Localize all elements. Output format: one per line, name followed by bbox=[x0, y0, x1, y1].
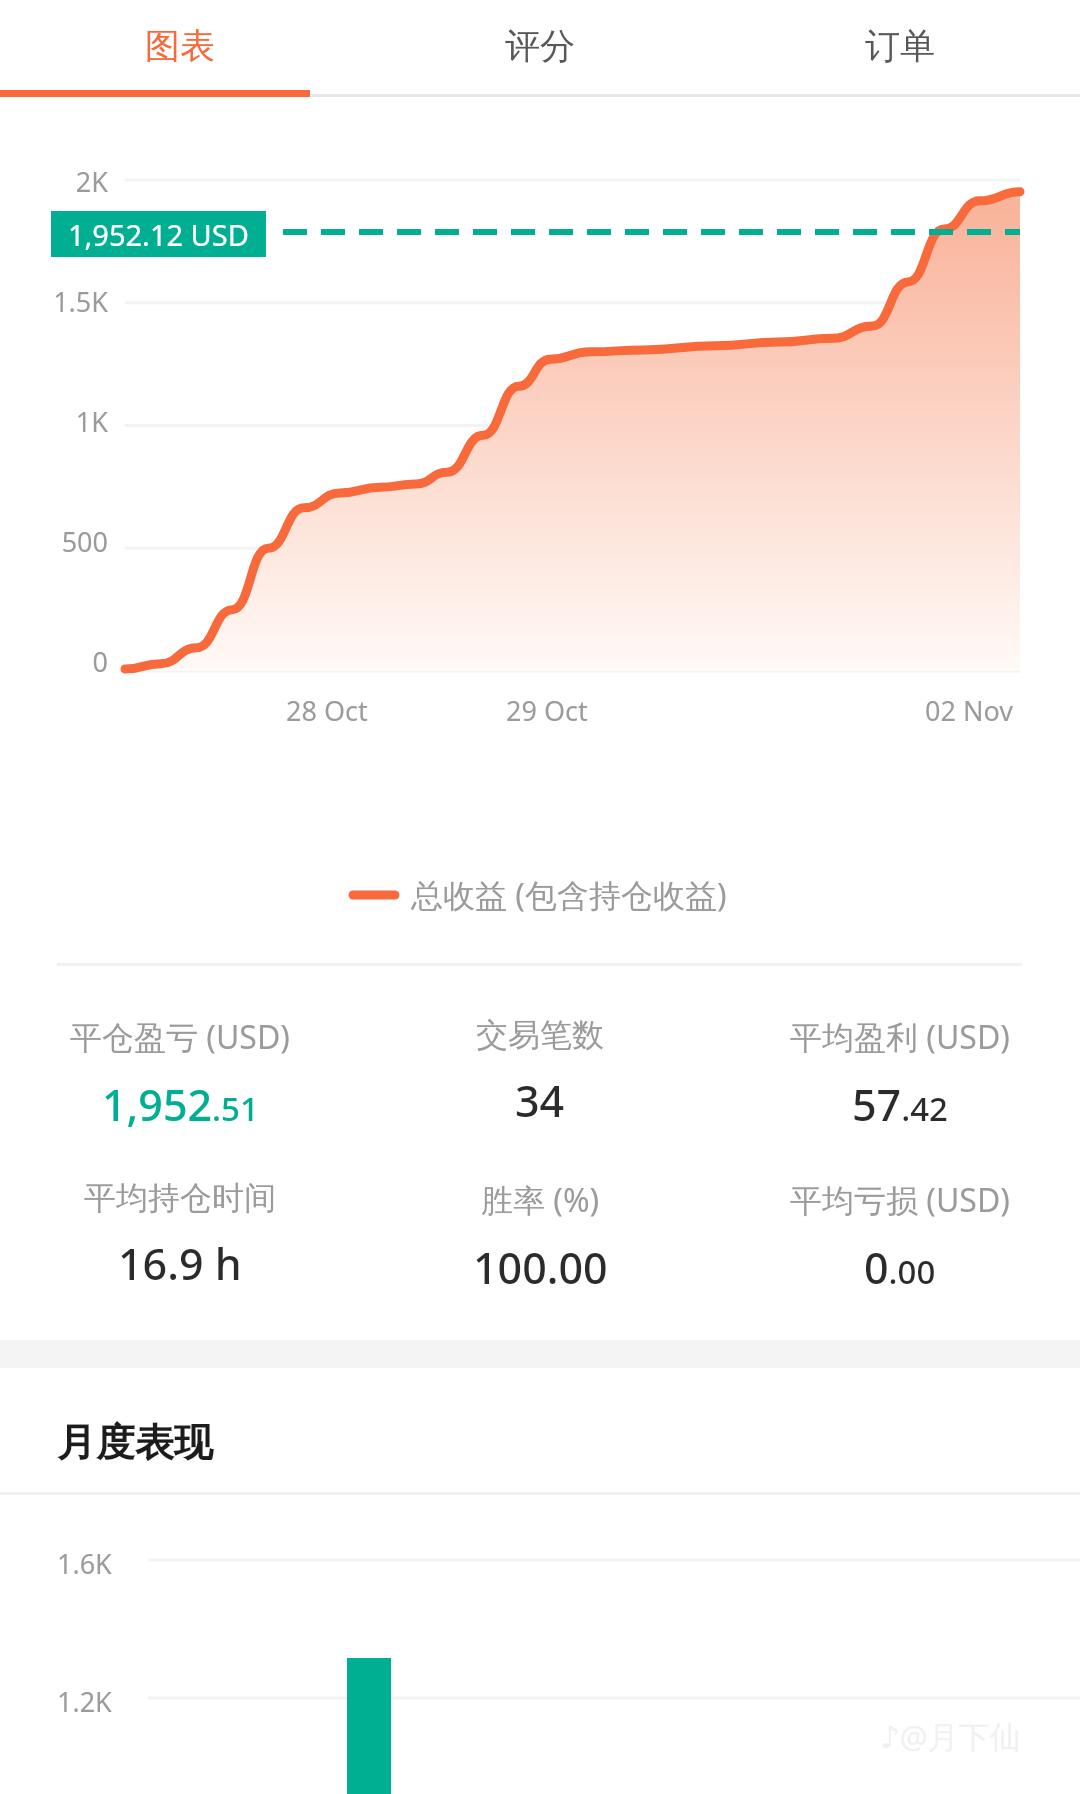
staticText: 28 Oct bbox=[286, 692, 368, 729]
staticText: 34 bbox=[515, 1071, 565, 1130]
staticText: 1.6K bbox=[57, 1545, 112, 1582]
staticText: 1,952.51 bbox=[102, 1075, 259, 1134]
staticText: 1,952.12 USD bbox=[68, 215, 249, 254]
button[interactable]: 平均亏损 (USD) bbox=[720, 1178, 1080, 1297]
button[interactable]: 订单 bbox=[720, 0, 1080, 91]
staticText: 平均盈利 (USD) bbox=[790, 1015, 1010, 1059]
button[interactable]: 平均持仓时间 bbox=[0, 1178, 360, 1293]
staticText: 月度表现 bbox=[57, 1418, 213, 1467]
staticText: 1K bbox=[0, 403, 108, 440]
staticText: 平仓盈亏 (USD) bbox=[70, 1015, 290, 1059]
button[interactable]: 平仓盈亏 (USD) bbox=[0, 1015, 360, 1134]
staticText: ♪@月下仙 bbox=[880, 1715, 1021, 1757]
staticText: 2K bbox=[0, 163, 108, 200]
staticText: 平均亏损 (USD) bbox=[790, 1178, 1010, 1222]
staticText: 1.2K bbox=[57, 1683, 112, 1720]
button[interactable]: 图表 bbox=[0, 0, 360, 91]
staticText: 0 bbox=[0, 643, 108, 680]
staticText: 57.42 bbox=[852, 1075, 948, 1134]
staticText: 评分 bbox=[505, 24, 575, 68]
staticText: 1.5K bbox=[0, 283, 108, 320]
button[interactable]: 平均盈利 (USD) bbox=[720, 1015, 1080, 1134]
button[interactable]: 胜率 (%) bbox=[360, 1178, 720, 1297]
staticText: 交易笔数 bbox=[476, 1015, 604, 1055]
staticText: 订单 bbox=[865, 24, 935, 68]
staticText: 29 Oct bbox=[506, 692, 588, 729]
button[interactable]: 评分 bbox=[360, 0, 720, 91]
button[interactable]: 交易笔数 bbox=[360, 1015, 720, 1130]
staticText: 总收益 (包含持仓收益) bbox=[411, 873, 727, 917]
staticText: 500 bbox=[0, 523, 108, 560]
staticText: 16.9 h bbox=[118, 1234, 242, 1293]
staticText: 胜率 (%) bbox=[481, 1178, 600, 1222]
staticText: 100.00 bbox=[473, 1238, 608, 1297]
staticText: 0.00 bbox=[864, 1238, 936, 1297]
staticText: 02 Nov bbox=[925, 692, 1013, 729]
staticText: 平均持仓时间 bbox=[84, 1178, 276, 1218]
staticText: 图表 bbox=[145, 24, 215, 68]
